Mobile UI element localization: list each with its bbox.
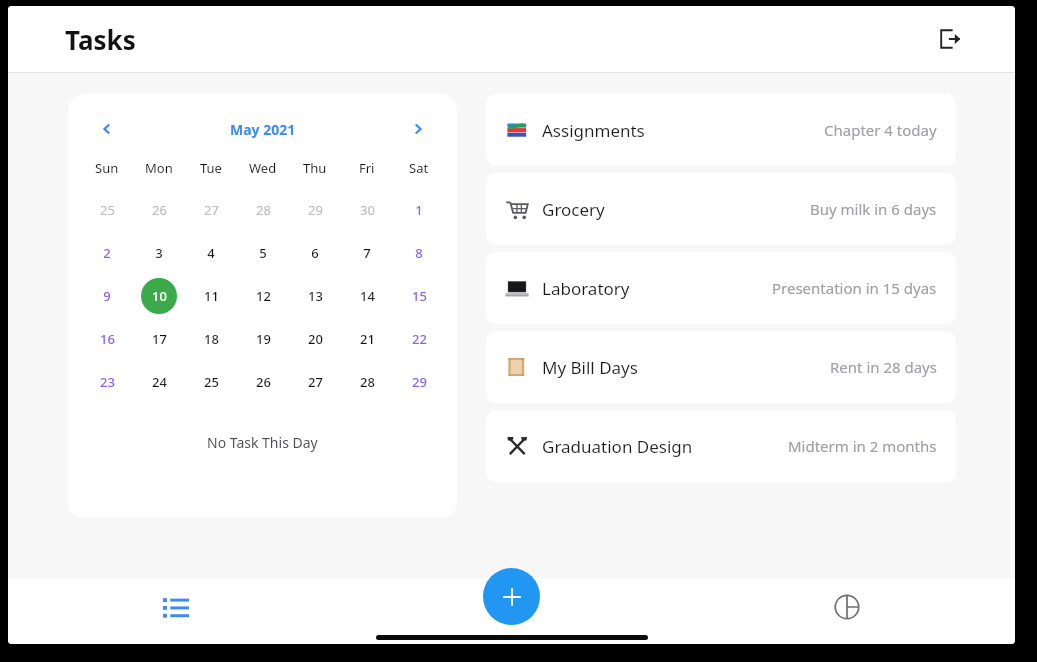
button[interactable]: Laboratory (486, 252, 956, 324)
staticText: Fri (359, 159, 375, 177)
button[interactable]: 8 (401, 235, 437, 271)
staticText: 22 (412, 330, 427, 348)
staticText: Sat (409, 159, 429, 177)
button[interactable]: 27 (297, 364, 333, 400)
staticText: 11 (204, 287, 219, 305)
staticText: 26 (256, 373, 271, 391)
staticText: 20 (308, 330, 323, 348)
button[interactable]: 24 (141, 364, 177, 400)
staticText: 27 (204, 201, 219, 219)
staticText: 19 (256, 330, 271, 348)
button[interactable]: 17 (141, 321, 177, 357)
staticText: 17 (152, 330, 167, 348)
button[interactable]: 21 (349, 321, 385, 357)
staticText: Mon (145, 159, 173, 177)
staticText: Assignments (542, 119, 645, 142)
button[interactable]: 28 (245, 192, 281, 228)
staticText: 29 (412, 373, 427, 391)
staticText: 7 (363, 244, 371, 262)
staticText: Midterm in 2 months (788, 436, 937, 456)
staticText: Presentation in 15 dyas (772, 278, 937, 298)
button[interactable]: Graduation Design (486, 410, 956, 482)
staticText: Grocery (542, 198, 605, 221)
button[interactable]: 9 (89, 278, 125, 314)
button[interactable]: 29 (297, 192, 333, 228)
staticText: 26 (152, 201, 167, 219)
button[interactable]: 4 (193, 235, 229, 271)
button[interactable]: 27 (193, 192, 229, 228)
button[interactable]: 7 (349, 235, 385, 271)
button[interactable]: 15 (401, 278, 437, 314)
staticText: 16 (100, 330, 115, 348)
button[interactable]: 16 (89, 321, 125, 357)
button[interactable]: 14 (349, 278, 385, 314)
button[interactable]: 2 (89, 235, 125, 271)
button[interactable]: 10 (141, 278, 177, 314)
button[interactable]: 20 (297, 321, 333, 357)
staticText: 21 (360, 330, 375, 348)
staticText: 27 (308, 373, 323, 391)
staticText: 18 (204, 330, 219, 348)
staticText: 12 (256, 287, 271, 305)
staticText: 9 (103, 287, 111, 305)
staticText: 5 (259, 244, 267, 262)
button[interactable]: Next month (403, 114, 433, 144)
button[interactable]: 6 (297, 235, 333, 271)
staticText: My Bill Days (542, 356, 638, 379)
button[interactable]: 1 (401, 192, 437, 228)
staticText: 6 (311, 244, 319, 262)
staticText: Graduation Design (542, 435, 693, 458)
staticText: May 2021 (230, 120, 296, 139)
staticText: 10 (152, 287, 167, 305)
button[interactable]: 25 (193, 364, 229, 400)
button[interactable]: 30 (349, 192, 385, 228)
staticText: 13 (308, 287, 323, 305)
staticText: Sun (95, 159, 119, 177)
staticText: 2 (103, 244, 111, 262)
staticText: 3 (155, 244, 163, 262)
staticText: 24 (152, 373, 167, 391)
button[interactable]: Previous month (92, 114, 122, 144)
staticText: 25 (204, 373, 219, 391)
button[interactable]: 18 (193, 321, 229, 357)
button[interactable]: 26 (141, 192, 177, 228)
staticText: 25 (100, 201, 115, 219)
staticText: Rent in 28 days (830, 357, 937, 377)
button[interactable]: 22 (401, 321, 437, 357)
staticText: 29 (308, 201, 323, 219)
button[interactable]: 26 (245, 364, 281, 400)
staticText: 14 (360, 287, 375, 305)
staticText: 28 (256, 201, 271, 219)
button[interactable]: 12 (245, 278, 281, 314)
button[interactable]: 19 (245, 321, 281, 357)
staticText: 28 (360, 373, 375, 391)
staticText: 23 (100, 373, 115, 391)
button[interactable]: 25 (89, 192, 125, 228)
button[interactable]: 5 (245, 235, 281, 271)
button[interactable]: Statistics (679, 578, 1015, 644)
staticText: Tasks (65, 22, 136, 57)
button[interactable]: 11 (193, 278, 229, 314)
button[interactable]: Task list (8, 578, 343, 644)
button[interactable]: Add task (483, 568, 540, 625)
button[interactable]: 3 (141, 235, 177, 271)
button[interactable]: Grocery (486, 173, 956, 245)
staticText: 8 (415, 244, 423, 262)
button[interactable]: My Bill Days (486, 331, 956, 403)
staticText: 4 (207, 244, 215, 262)
staticText: 15 (412, 287, 427, 305)
staticText: 30 (360, 201, 375, 219)
staticText: Buy milk in 6 days (810, 199, 937, 219)
staticText: Wed (249, 159, 277, 177)
button[interactable]: 28 (349, 364, 385, 400)
staticText: Tue (200, 159, 222, 177)
staticText: No Task This Day (207, 433, 318, 452)
staticText: Thu (303, 159, 327, 177)
button[interactable]: 29 (401, 364, 437, 400)
button[interactable]: Assignments (486, 94, 956, 166)
button[interactable]: Log out (930, 19, 970, 59)
staticText: Laboratory (542, 277, 630, 300)
button[interactable]: 23 (89, 364, 125, 400)
staticText: Chapter 4 today (824, 120, 937, 140)
button[interactable]: 13 (297, 278, 333, 314)
